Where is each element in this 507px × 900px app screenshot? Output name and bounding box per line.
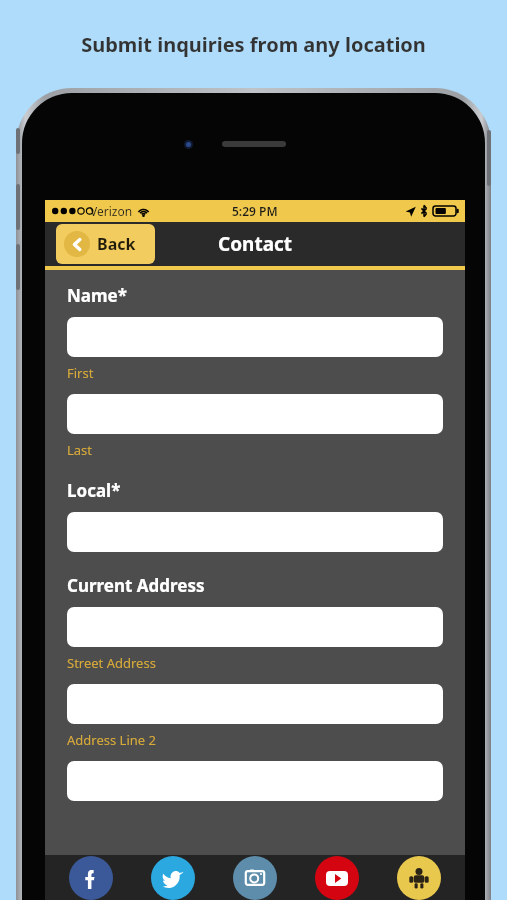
staticText: Back — [97, 233, 136, 255]
button[interactable]: More — [397, 856, 441, 900]
button[interactable]: Facebook — [69, 856, 113, 900]
button[interactable]: YouTube — [315, 856, 359, 900]
staticText: Contact — [218, 231, 293, 257]
button[interactable]: Twitter — [151, 856, 195, 900]
staticText: Name* — [67, 284, 127, 307]
staticText: First — [67, 364, 94, 382]
button[interactable] — [67, 684, 443, 724]
button[interactable] — [67, 607, 443, 647]
staticText: Local* — [67, 479, 121, 502]
button[interactable] — [67, 761, 443, 801]
button[interactable]: Back — [56, 224, 155, 264]
button[interactable]: Instagram — [233, 856, 277, 900]
staticText: Submit inquiries from any location — [0, 31, 507, 58]
button[interactable] — [67, 394, 443, 434]
staticText: Street Address — [67, 654, 156, 672]
button[interactable] — [67, 317, 443, 357]
staticText: Address Line 2 — [67, 731, 156, 749]
staticText: Current Address — [67, 574, 205, 597]
button[interactable] — [67, 512, 443, 552]
staticText: Last — [67, 441, 93, 459]
staticText: Verizon — [90, 203, 133, 219]
staticText: 5:29 PM — [232, 203, 278, 219]
